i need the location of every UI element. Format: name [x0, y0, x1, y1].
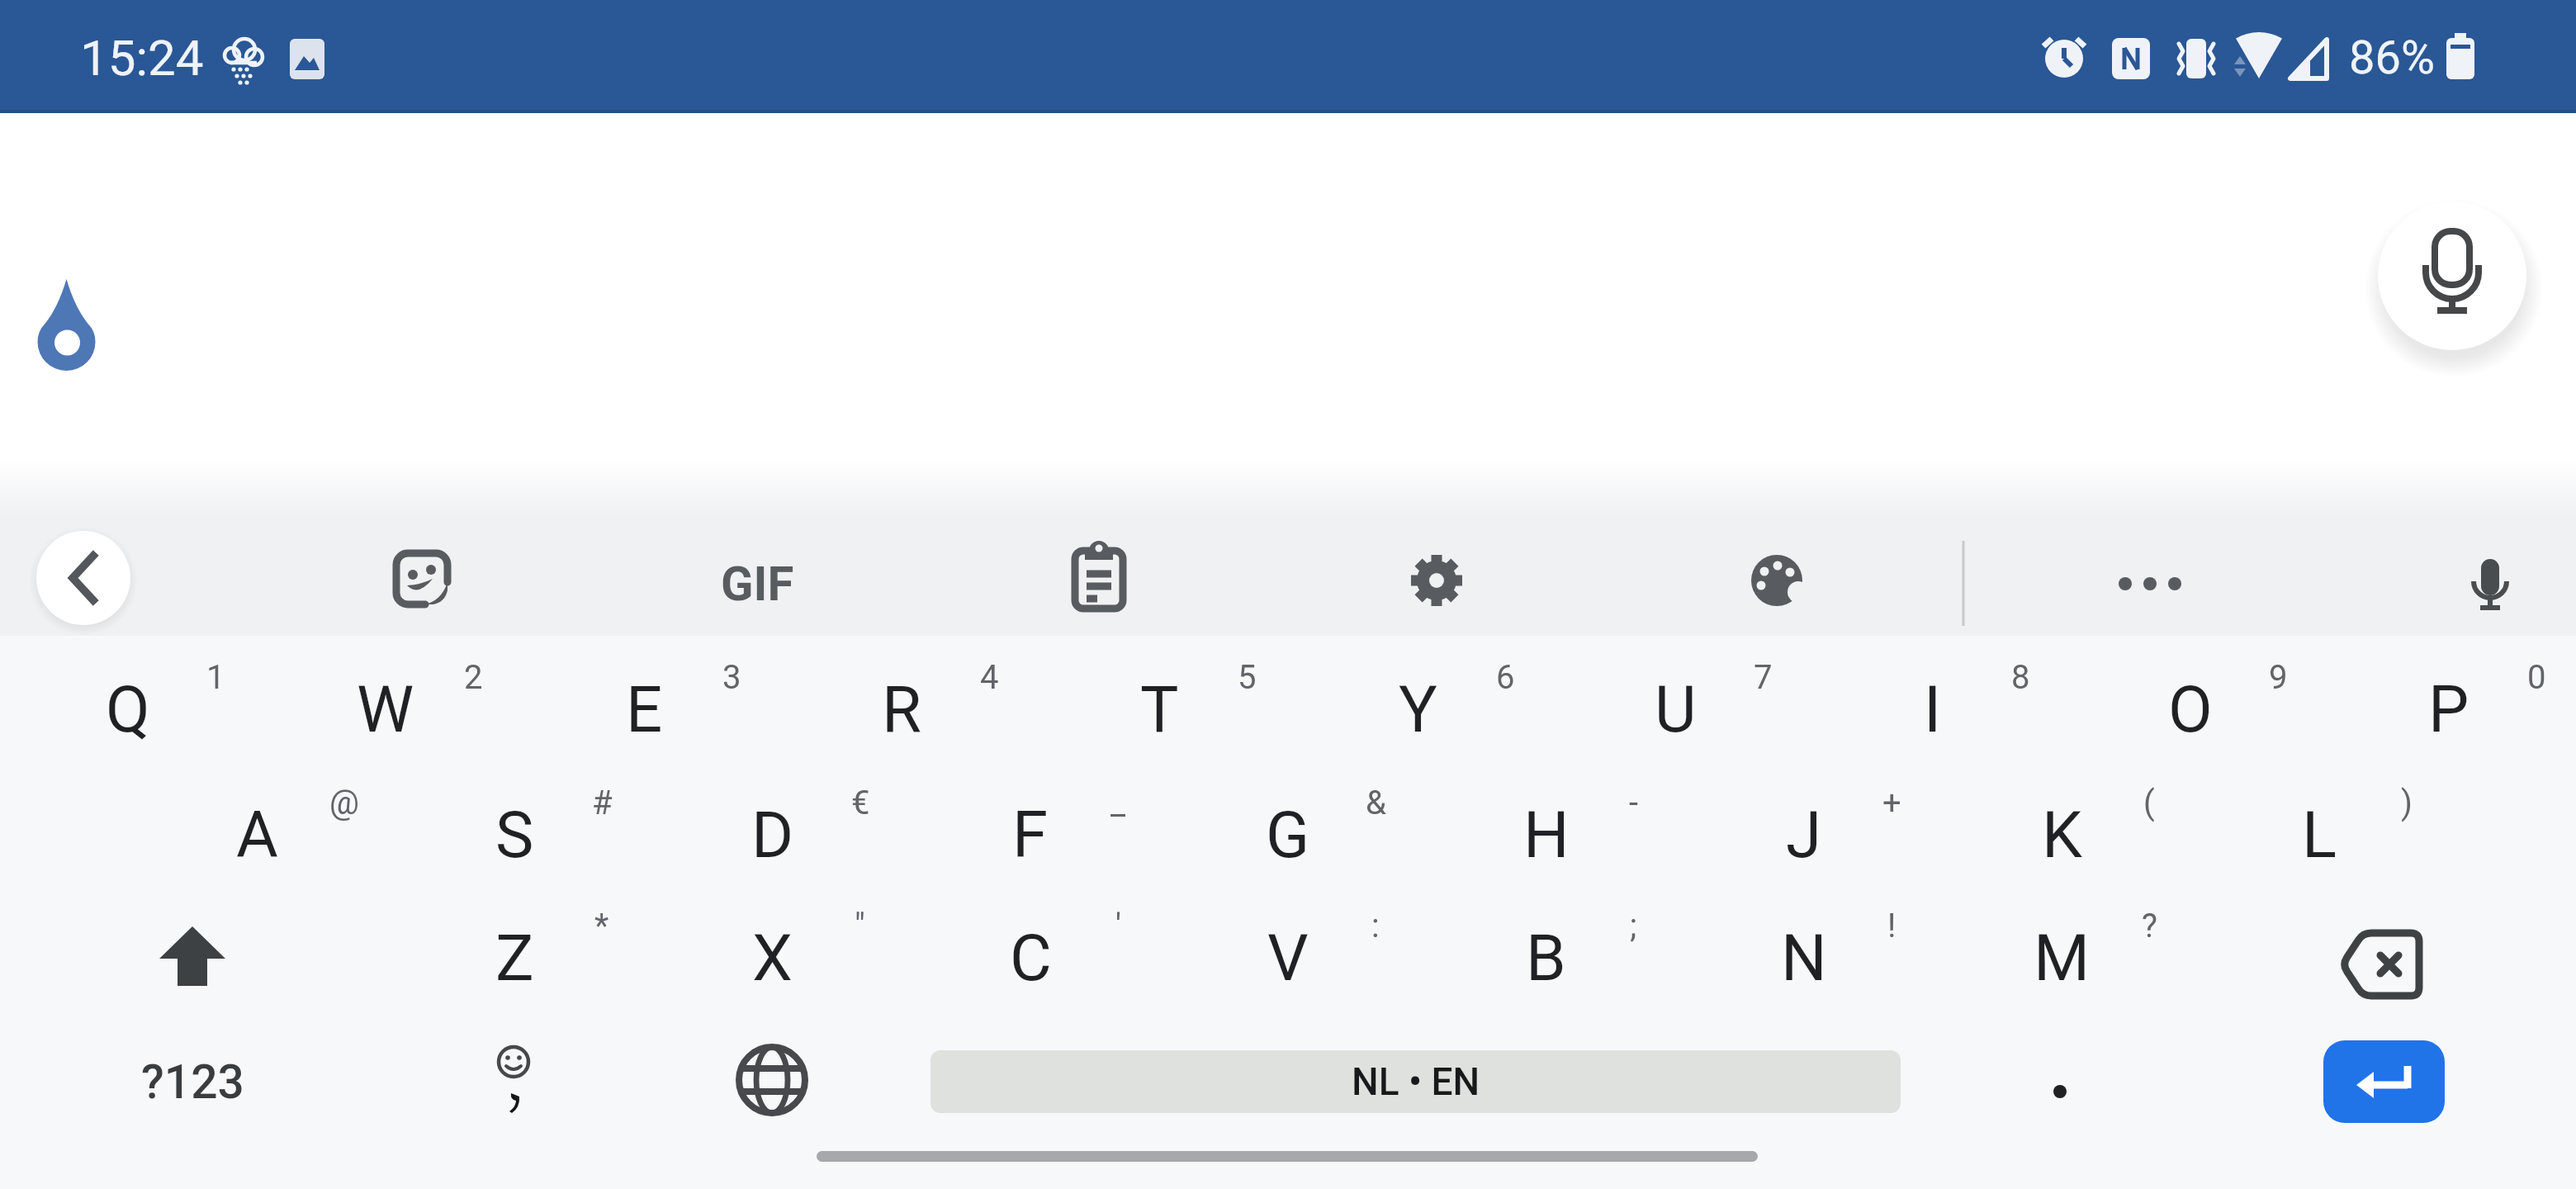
staticText: -: [1629, 784, 1639, 822]
staticText: S: [495, 798, 534, 873]
staticText: 9: [2269, 658, 2288, 697]
button[interactable]: ?123: [56, 1021, 329, 1143]
button[interactable]: N: [1676, 897, 1932, 1019]
button[interactable]: [2247, 899, 2519, 1023]
button[interactable]: G: [1160, 774, 1416, 896]
staticText: ': [1115, 907, 1121, 945]
button[interactable]: [648, 1019, 896, 1141]
staticText: NL • EN: [1352, 1059, 1480, 1104]
button[interactable]: F: [902, 774, 1158, 896]
staticText: *: [594, 907, 609, 945]
staticText: W: [357, 672, 414, 747]
staticText: U: [1655, 672, 1697, 747]
staticText: C: [1010, 921, 1052, 996]
button[interactable]: S: [386, 774, 642, 896]
button[interactable]: [2096, 530, 2204, 637]
button[interactable]: [368, 525, 476, 632]
staticText: G: [1266, 798, 1310, 873]
button[interactable]: Y: [1290, 648, 1546, 770]
staticText: D: [751, 798, 794, 873]
button[interactable]: P: [2321, 648, 2576, 770]
staticText: #: [592, 784, 613, 822]
staticText: 7: [1754, 658, 1773, 697]
staticText: M: [2034, 921, 2091, 996]
button[interactable]: NL • EN: [930, 1050, 1901, 1113]
staticText: X: [752, 921, 793, 996]
staticText: ;: [1630, 907, 1637, 945]
button[interactable]: V: [1160, 897, 1416, 1019]
staticText: Q: [106, 672, 150, 747]
staticText: V: [1267, 921, 1309, 996]
button[interactable]: [56, 895, 329, 1019]
staticText: (: [2143, 784, 2155, 822]
staticText: 3: [722, 658, 741, 697]
staticText: ": [855, 907, 865, 945]
staticText: _: [1110, 784, 1126, 822]
staticText: N: [1781, 921, 1827, 996]
staticText: 86%: [2349, 31, 2435, 85]
button[interactable]: U: [1547, 648, 1803, 770]
button[interactable]: H: [1418, 774, 1674, 896]
staticText: J: [1786, 798, 1822, 873]
staticText: Y: [1399, 672, 1437, 747]
staticText: ?123: [141, 1054, 244, 1110]
button[interactable]: C: [902, 897, 1158, 1019]
staticText: T: [1140, 672, 1179, 747]
button[interactable]: O: [2062, 648, 2318, 770]
button[interactable]: [36, 531, 130, 625]
staticText: €: [851, 784, 870, 822]
button[interactable]: [2378, 201, 2526, 350]
button[interactable]: [2436, 530, 2544, 637]
staticText: 6: [1496, 658, 1515, 697]
staticText: 2: [464, 658, 483, 697]
staticText: P: [2428, 672, 2469, 747]
staticText: 1: [206, 658, 225, 697]
staticText: O: [2168, 672, 2213, 747]
button[interactable]: [1383, 527, 1490, 634]
staticText: @: [329, 784, 359, 822]
staticText: H: [1523, 798, 1570, 873]
button[interactable]: J: [1676, 774, 1932, 896]
button[interactable]: M: [1934, 897, 2190, 1019]
button[interactable]: I: [1805, 648, 2061, 770]
staticText: I: [1924, 672, 1942, 747]
staticText: ): [2401, 784, 2413, 822]
staticText: A: [236, 798, 278, 873]
staticText: GIF: [721, 556, 794, 612]
button[interactable]: K: [1934, 774, 2190, 896]
button[interactable]: B: [1418, 897, 1674, 1019]
button[interactable]: R: [774, 648, 1030, 770]
staticText: K: [2042, 798, 2082, 873]
staticText: B: [1526, 921, 1566, 996]
button[interactable]: L: [2191, 774, 2447, 896]
button[interactable]: D: [645, 774, 901, 896]
staticText: 5: [1238, 658, 1257, 697]
staticText: Z: [495, 921, 534, 996]
button[interactable]: X: [644, 897, 900, 1019]
button[interactable]: [2323, 1040, 2445, 1123]
staticText: &: [1366, 784, 1386, 822]
button[interactable]: W: [258, 648, 514, 770]
button[interactable]: Q: [0, 648, 256, 770]
staticText: :: [1371, 907, 1380, 945]
staticText: 4: [980, 658, 999, 697]
staticText: 15:24: [80, 29, 204, 87]
staticText: L: [2302, 798, 2337, 873]
button[interactable]: [1045, 524, 1153, 632]
staticText: F: [1012, 798, 1049, 873]
button[interactable]: T: [1031, 648, 1287, 770]
staticText: R: [882, 672, 922, 747]
button[interactable]: [390, 1021, 637, 1143]
button[interactable]: A: [129, 774, 385, 896]
button[interactable]: GIF: [675, 530, 840, 637]
button[interactable]: [1936, 1021, 2184, 1143]
staticText: ?: [2142, 907, 2157, 945]
staticText: E: [626, 672, 663, 747]
staticText: 8: [2011, 658, 2030, 697]
staticText: +: [1882, 784, 1901, 822]
staticText: 0: [2527, 658, 2546, 697]
staticText: !: [1887, 907, 1896, 945]
button[interactable]: Z: [386, 897, 642, 1019]
button[interactable]: E: [516, 648, 772, 770]
button[interactable]: [1723, 527, 1830, 634]
